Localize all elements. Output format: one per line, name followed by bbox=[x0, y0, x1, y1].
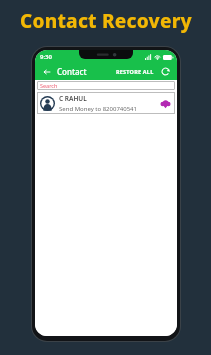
staticText: C RAHUL bbox=[59, 94, 87, 103]
staticText: RESTORE ALL bbox=[116, 68, 154, 75]
button[interactable]: Refresh bbox=[159, 65, 172, 78]
staticText: Contact Recovery bbox=[20, 8, 192, 34]
button[interactable]: Search bbox=[37, 81, 175, 90]
button[interactable]: RESTORE ALL bbox=[114, 66, 156, 77]
staticText: Contact bbox=[57, 66, 87, 77]
staticText: Send Money to 8200740541 bbox=[59, 105, 137, 113]
button[interactable]: Restore contact bbox=[159, 97, 172, 110]
button[interactable]: Back bbox=[40, 65, 53, 78]
staticText: Search bbox=[40, 82, 58, 89]
button[interactable]: C RAHUL bbox=[37, 92, 175, 114]
staticText: 9:30 bbox=[40, 53, 52, 61]
